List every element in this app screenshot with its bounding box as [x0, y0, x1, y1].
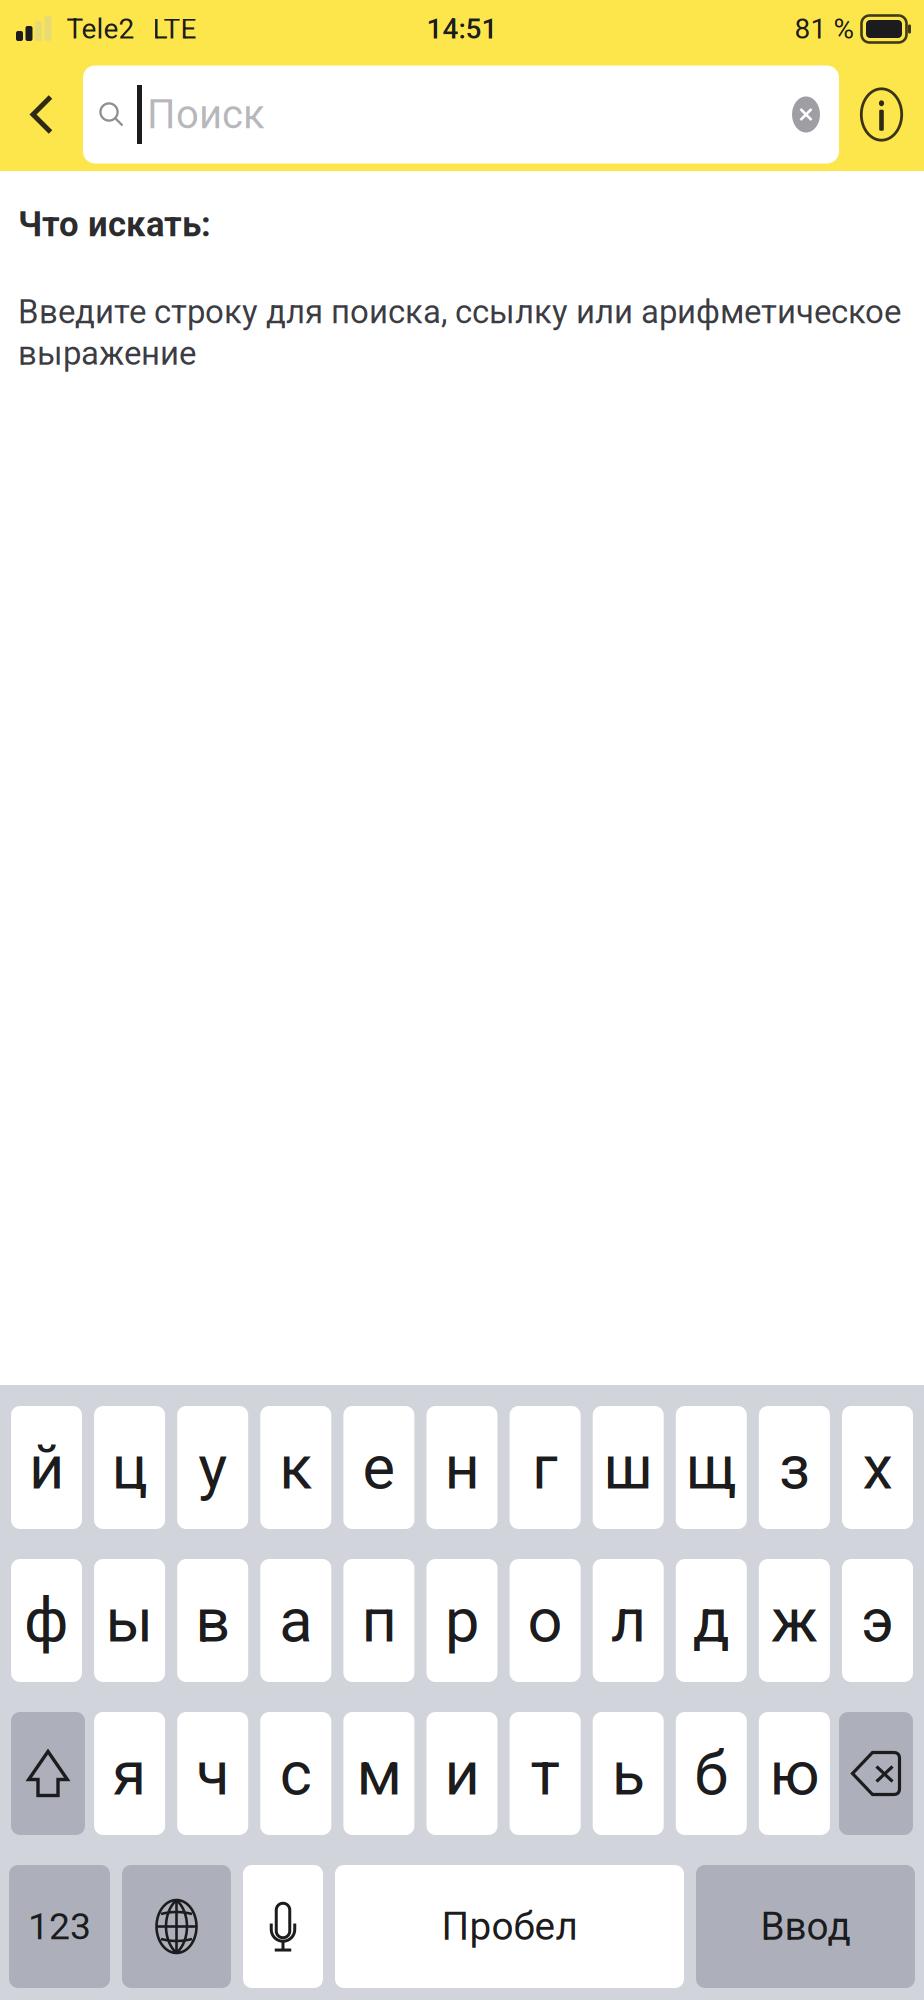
staticText: Что искать: — [18, 204, 211, 245]
button[interactable]: г — [510, 1406, 581, 1529]
staticText: ч — [196, 1738, 229, 1809]
staticText: в — [195, 1585, 230, 1656]
button[interactable]: ж — [759, 1559, 830, 1682]
button[interactable]: Shift — [11, 1712, 85, 1835]
staticText: ф — [24, 1585, 69, 1656]
staticText: х — [862, 1432, 892, 1503]
button[interactable]: Ввод — [696, 1865, 915, 1988]
staticText: я — [113, 1738, 147, 1809]
staticText: 14:51 — [426, 13, 497, 45]
button[interactable]: л — [593, 1559, 664, 1682]
staticText: у — [198, 1432, 227, 1503]
button[interactable]: Info — [839, 58, 924, 171]
button[interactable]: ш — [593, 1406, 664, 1529]
staticText: д — [693, 1585, 730, 1656]
button[interactable]: р — [426, 1559, 497, 1682]
button[interactable]: ю — [759, 1712, 830, 1835]
staticText: Пробел — [441, 1904, 577, 1949]
staticText: т — [531, 1738, 560, 1809]
button[interactable]: п — [343, 1559, 414, 1682]
staticText: п — [361, 1585, 396, 1656]
button[interactable]: у — [177, 1406, 248, 1529]
button[interactable]: ц — [94, 1406, 165, 1529]
button[interactable]: Next keyboard — [122, 1865, 231, 1988]
button[interactable]: д — [676, 1559, 747, 1682]
button[interactable]: ы — [94, 1559, 165, 1682]
staticText: 81 % — [794, 13, 854, 45]
staticText: э — [861, 1585, 894, 1656]
staticText: Введите строку для поиска, ссылку или ар… — [18, 293, 901, 331]
staticText: а — [279, 1585, 312, 1656]
button[interactable]: к — [260, 1406, 331, 1529]
button[interactable]: е — [343, 1406, 414, 1529]
staticText: р — [445, 1585, 479, 1656]
staticText: ш — [603, 1432, 653, 1503]
button[interactable]: а — [260, 1559, 331, 1682]
staticText: и — [444, 1738, 479, 1809]
staticText: с — [280, 1738, 312, 1809]
staticText: м — [356, 1738, 401, 1809]
staticText: к — [279, 1432, 312, 1503]
staticText: ы — [106, 1585, 154, 1656]
staticText: г — [532, 1432, 558, 1503]
button[interactable]: н — [426, 1406, 497, 1529]
button[interactable]: Back — [0, 58, 83, 171]
staticText: б — [694, 1738, 728, 1809]
staticText: ь — [612, 1738, 645, 1809]
staticText: ю — [769, 1738, 819, 1809]
button[interactable]: т — [510, 1712, 581, 1835]
button[interactable]: Dictate — [243, 1865, 323, 1988]
staticText: 123 — [28, 1905, 91, 1948]
staticText: о — [528, 1585, 563, 1656]
button[interactable]: ь — [593, 1712, 664, 1835]
staticText: й — [29, 1432, 64, 1503]
staticText: выражение — [18, 334, 196, 373]
staticText: Ввод — [760, 1904, 850, 1949]
button[interactable]: Delete — [839, 1712, 913, 1835]
button[interactable]: ф — [11, 1559, 82, 1682]
staticText: л — [611, 1585, 646, 1656]
button[interactable]: я — [94, 1712, 165, 1835]
staticText: е — [362, 1432, 395, 1503]
button[interactable]: э — [842, 1559, 913, 1682]
staticText: щ — [686, 1432, 737, 1503]
button[interactable]: й — [11, 1406, 82, 1529]
staticText: LTE — [152, 13, 196, 45]
button[interactable]: з — [759, 1406, 830, 1529]
button[interactable]: о — [510, 1559, 581, 1682]
button[interactable]: 123 — [9, 1865, 110, 1988]
button[interactable]: щ — [676, 1406, 747, 1529]
staticText: н — [444, 1432, 479, 1503]
staticText: Tele2 — [66, 13, 134, 45]
button[interactable]: х — [842, 1406, 913, 1529]
button[interactable]: ч — [177, 1712, 248, 1835]
staticText: ц — [112, 1432, 148, 1503]
button[interactable]: м — [343, 1712, 414, 1835]
button[interactable]: с — [260, 1712, 331, 1835]
staticText: ж — [771, 1585, 818, 1656]
button[interactable]: Пробел — [335, 1865, 684, 1988]
staticText: Поиск — [147, 91, 265, 138]
staticText: з — [779, 1432, 810, 1503]
button[interactable]: б — [676, 1712, 747, 1835]
button[interactable]: и — [426, 1712, 497, 1835]
button[interactable]: в — [177, 1559, 248, 1682]
